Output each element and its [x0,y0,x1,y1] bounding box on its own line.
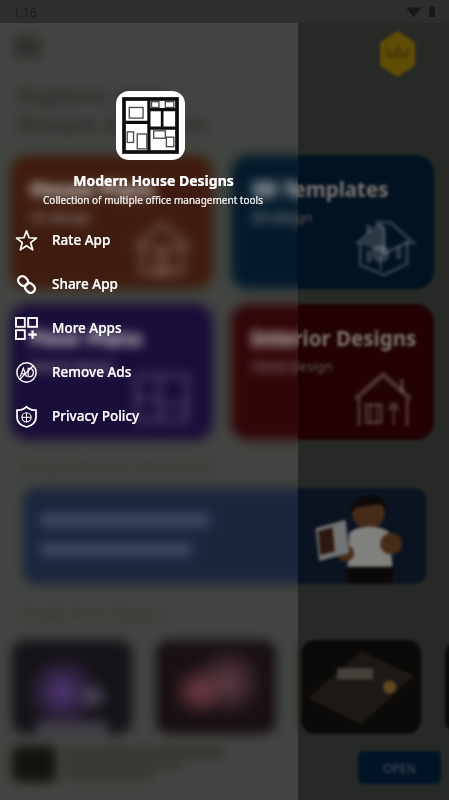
staticText: Interior Designs [251,324,417,352]
staticText: House Plans [30,175,155,203]
staticText: Explore your [17,78,168,111]
button[interactable]: Rate App [0,218,298,262]
button[interactable] [156,640,276,734]
staticText: Sketch design [30,357,115,375]
staticText: 2D design [30,208,92,226]
staticText: Share App [52,275,118,293]
staticText: Home design [251,357,298,375]
staticText: Interior Designs [251,324,298,352]
button[interactable] [301,640,421,734]
button[interactable]: Share App [0,262,298,306]
staticText: 1:16 [13,4,37,20]
staticText: Explore your [17,78,168,111]
staticText: Dream Interiors [17,107,209,140]
staticText: Sketch design [30,357,115,375]
staticText: 2D design [30,208,92,226]
staticText: OPEN [383,760,416,776]
staticText: 3D design [251,208,313,226]
staticText: More Apps [52,319,122,337]
staticText: 3D Templates [251,175,389,203]
staticText: Privacy Policy [52,407,140,425]
button[interactable]: Remove Ads [0,350,298,394]
other: Wi-Fi and battery status [406,5,440,18]
staticText: Home design [251,357,333,375]
staticText: Rate App [52,231,111,249]
staticText: 3D Templates [251,175,298,203]
button[interactable]: More Apps [0,306,298,350]
button[interactable]: OPEN [358,751,441,784]
staticText: Floor Plans [30,324,143,352]
button[interactable] [445,640,449,734]
staticText: House Plans [30,175,155,203]
staticText: 3D design [251,208,298,226]
button[interactable]: Privacy Policy [0,394,298,438]
staticText: Dream Interiors [17,107,209,140]
button[interactable] [156,640,276,734]
staticText: Collection of multiple office management… [43,193,263,207]
button[interactable] [12,640,132,734]
staticText: Remove Ads [52,363,132,381]
staticText: Modern House Designs [73,171,234,190]
staticText: Floor Plans [30,324,143,352]
button[interactable] [12,640,132,734]
